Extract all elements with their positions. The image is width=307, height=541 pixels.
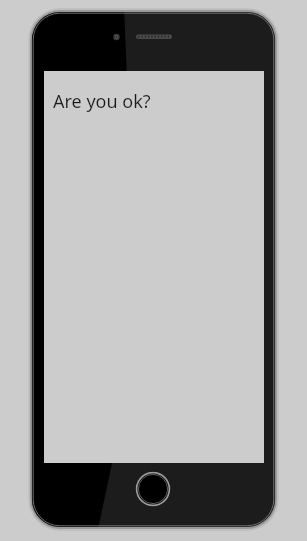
button[interactable]: Are you ok? [53,89,151,114]
button[interactable]: Home [135,471,171,507]
